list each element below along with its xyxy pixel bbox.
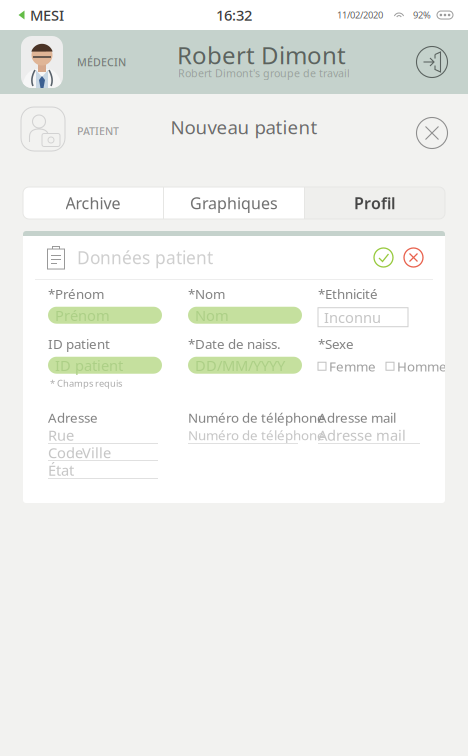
button[interactable]: Homme bbox=[386, 357, 447, 375]
button[interactable]: Femme bbox=[318, 357, 376, 375]
staticText: 11/02/2020 bbox=[337, 9, 383, 21]
staticText: Graphiques bbox=[190, 192, 278, 214]
staticText: Robert Dimont bbox=[177, 39, 346, 71]
button[interactable]: Déconnexion bbox=[415, 45, 449, 79]
staticText: Ville bbox=[82, 443, 111, 462]
staticText: ID patient bbox=[55, 355, 123, 375]
staticText: Homme bbox=[397, 357, 447, 375]
staticText: *Ethnicité bbox=[318, 285, 378, 303]
button[interactable]: Archive bbox=[23, 187, 163, 219]
staticText: MESI bbox=[30, 5, 64, 25]
staticText: *Date de naiss. bbox=[188, 335, 281, 353]
staticText: *Prénom bbox=[48, 285, 104, 303]
staticText: Données patient bbox=[77, 246, 213, 269]
staticText: Numéro de téléphone bbox=[188, 426, 325, 444]
button[interactable]: Fermer bbox=[416, 117, 448, 149]
staticText: * Champs requis bbox=[50, 377, 122, 389]
staticText: Rue bbox=[48, 425, 74, 445]
staticText: MÉDECIN bbox=[77, 55, 126, 69]
staticText: Adresse mail bbox=[318, 425, 406, 445]
staticText: ID patient bbox=[48, 335, 110, 353]
staticText: Nom bbox=[195, 305, 229, 325]
button[interactable]: Valider bbox=[372, 246, 395, 269]
staticText: 92% bbox=[413, 9, 431, 21]
staticText: Code bbox=[48, 443, 83, 462]
staticText: Inconnu bbox=[324, 307, 381, 327]
button[interactable]: Graphiques bbox=[164, 187, 304, 219]
staticText: 16:32 bbox=[216, 5, 252, 25]
staticText: Archive bbox=[65, 192, 120, 214]
button[interactable]: Annuler bbox=[402, 246, 425, 269]
button[interactable]: Profil bbox=[305, 187, 445, 219]
staticText: Profil bbox=[354, 192, 396, 214]
button[interactable]: MESI bbox=[0, 0, 64, 30]
staticText: *Sexe bbox=[318, 335, 354, 353]
staticText: Adresse mail bbox=[318, 409, 396, 426]
staticText: Numéro de téléphone bbox=[188, 409, 325, 426]
staticText: *Nom bbox=[188, 285, 225, 303]
staticText: DD/MM/YYYY bbox=[195, 355, 285, 375]
staticText: Femme bbox=[329, 357, 376, 375]
staticText: Robert Dimont's groupe de travail bbox=[178, 66, 350, 80]
staticText: Nouveau patient bbox=[170, 115, 317, 139]
button[interactable]: Photo du patient bbox=[21, 107, 65, 151]
staticText: Adresse bbox=[48, 409, 98, 426]
staticText: État bbox=[48, 460, 74, 480]
staticText: PATIENT bbox=[77, 124, 119, 138]
staticText: Prénom bbox=[55, 305, 110, 325]
